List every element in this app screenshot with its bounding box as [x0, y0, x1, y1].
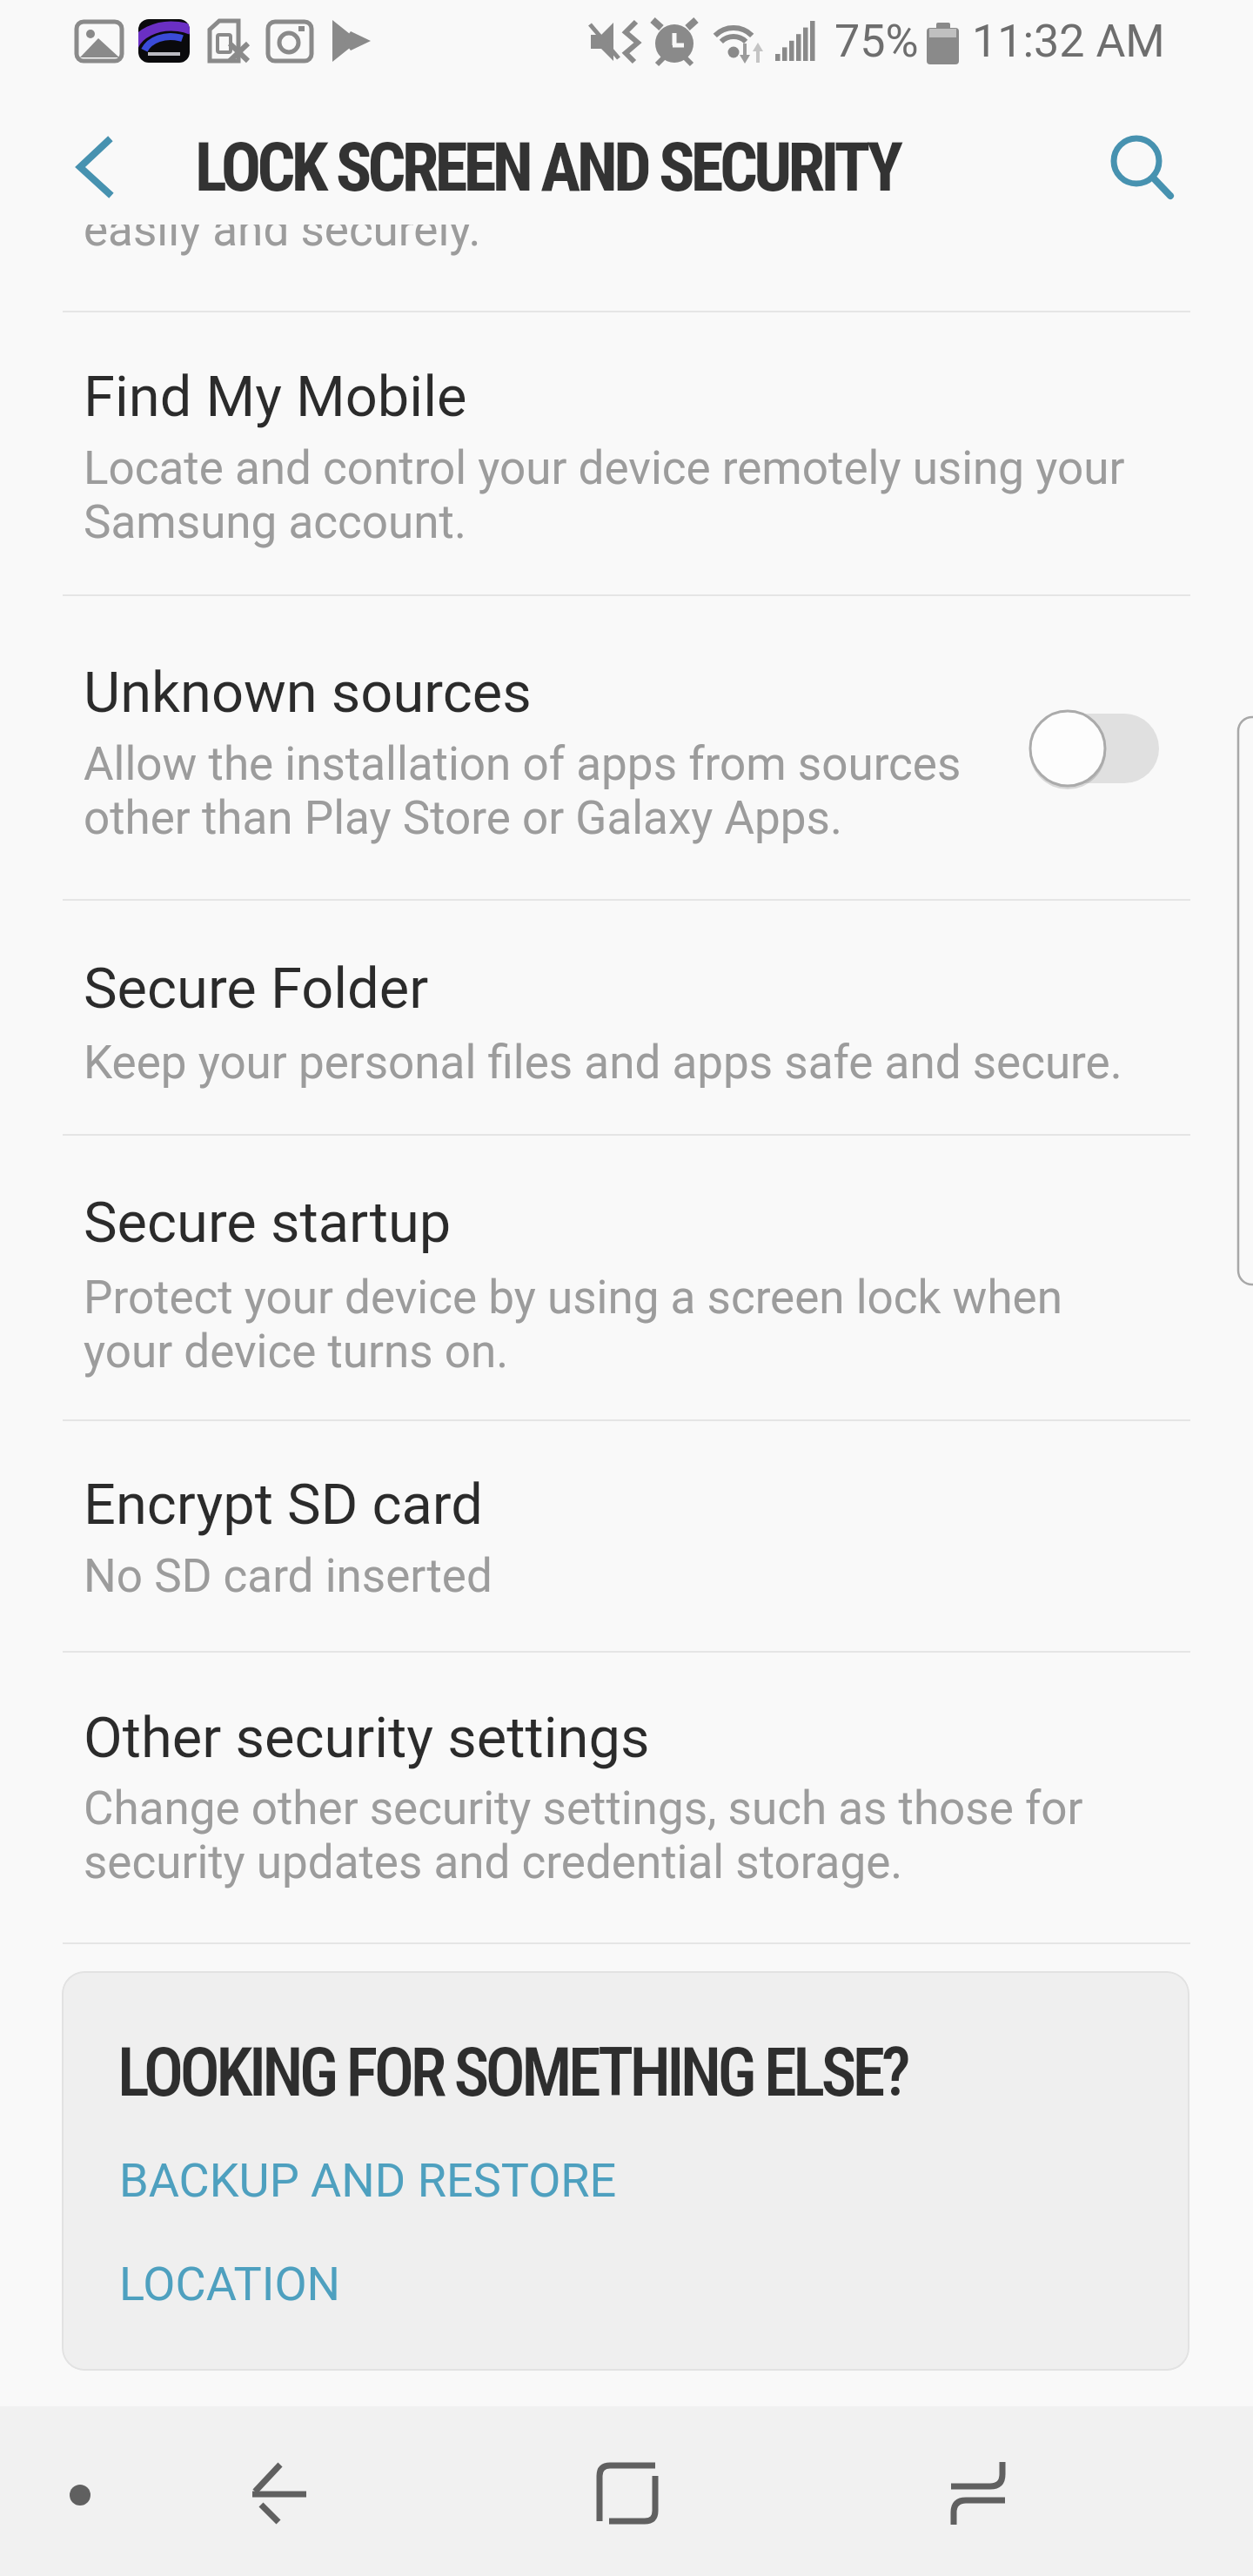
staticText: Protect your device by using a screen lo… — [84, 1271, 1062, 1325]
button[interactable]: BACKUP AND RESTORE — [102, 2135, 624, 2215]
staticText: BACKUP AND RESTORE — [119, 2153, 617, 2208]
staticText: Find My Mobile — [84, 364, 467, 430]
staticText: Secure Folder — [84, 956, 429, 1022]
staticText: No SD card inserted — [84, 1549, 492, 1603]
staticText: Secure startup — [84, 1190, 452, 1256]
button[interactable] — [917, 2432, 1039, 2554]
staticText: Allow the installation of apps from sour… — [84, 737, 962, 791]
button[interactable]: Encrypt SD card — [0, 1419, 1253, 1651]
staticText: other than Play Store or Galaxy Apps. — [84, 791, 842, 845]
button[interactable] — [44, 104, 165, 226]
staticText: LOCK SCREEN AND SECURITY — [195, 129, 900, 207]
staticText: Locate and control your device remotely … — [84, 441, 1125, 495]
staticText: 75% — [834, 15, 919, 68]
staticText: LOOKING FOR SOMETHING ELSE? — [117, 2034, 907, 2112]
button[interactable] — [1079, 104, 1201, 226]
staticText: Unknown sources — [84, 660, 532, 726]
staticText: Keep your personal files and apps safe a… — [84, 1036, 1122, 1090]
button[interactable] — [214, 2432, 336, 2554]
button[interactable]: Unknown sources — [0, 594, 1253, 899]
button[interactable]: Secure startup — [0, 1134, 1253, 1419]
button[interactable]: Find My Mobile — [0, 311, 1253, 594]
staticText: LOCATION — [119, 2257, 341, 2311]
staticText: your device turns on. — [84, 1325, 509, 1379]
button[interactable] — [566, 2432, 688, 2554]
staticText: security updates and credential storage. — [84, 1835, 903, 1889]
button[interactable]: LOCATION — [102, 2238, 398, 2318]
staticText: 11:32 AM — [972, 15, 1165, 68]
staticText: Encrypt SD card — [84, 1472, 483, 1538]
button[interactable] — [1009, 692, 1183, 805]
staticText: Change other security settings, such as … — [84, 1781, 1083, 1835]
staticText: Other security settings — [84, 1705, 650, 1771]
staticText: Samsung account. — [84, 495, 466, 549]
button[interactable]: Secure Folder — [0, 899, 1253, 1134]
button[interactable]: Other security settings — [0, 1651, 1253, 1942]
staticText: easily and securely. — [84, 203, 481, 257]
